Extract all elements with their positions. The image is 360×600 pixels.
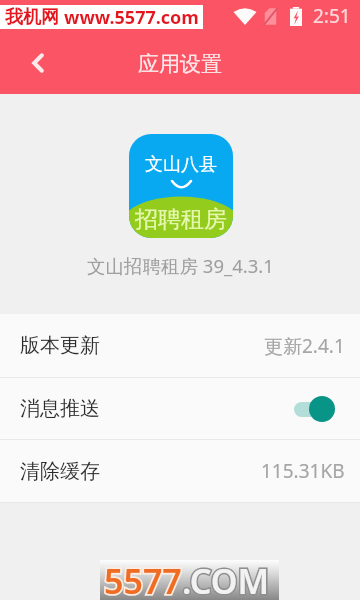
staticText: 2:51 xyxy=(313,3,351,29)
button[interactable]: 消息推送 xyxy=(293,394,345,424)
staticText: 招聘租房 xyxy=(135,205,227,234)
staticText: 版本更新 xyxy=(20,333,100,358)
staticText: 更新2.4.1 xyxy=(264,333,345,359)
staticText: 115.31KB xyxy=(261,458,345,484)
staticText: 我机网 xyxy=(5,6,59,29)
staticText: 应用设置 xyxy=(138,51,222,77)
staticText: 5577 xyxy=(104,558,182,598)
button[interactable]: 版本更新 xyxy=(0,314,360,377)
staticText: 清除缓存 xyxy=(20,459,100,484)
staticText: .COM xyxy=(182,558,270,598)
staticText: 文山八县 xyxy=(145,153,217,176)
button[interactable]: 消息推送 xyxy=(0,378,360,439)
staticText: .COM xyxy=(182,558,270,598)
staticText: 5577 xyxy=(104,558,182,598)
button[interactable]: Back xyxy=(0,32,62,94)
staticText: www.5577.com xyxy=(64,5,199,29)
staticText: 文山招聘租房 39_4.3.1 xyxy=(87,253,274,278)
staticText: 消息推送 xyxy=(20,396,100,421)
button[interactable]: 清除缓存 xyxy=(0,440,360,502)
